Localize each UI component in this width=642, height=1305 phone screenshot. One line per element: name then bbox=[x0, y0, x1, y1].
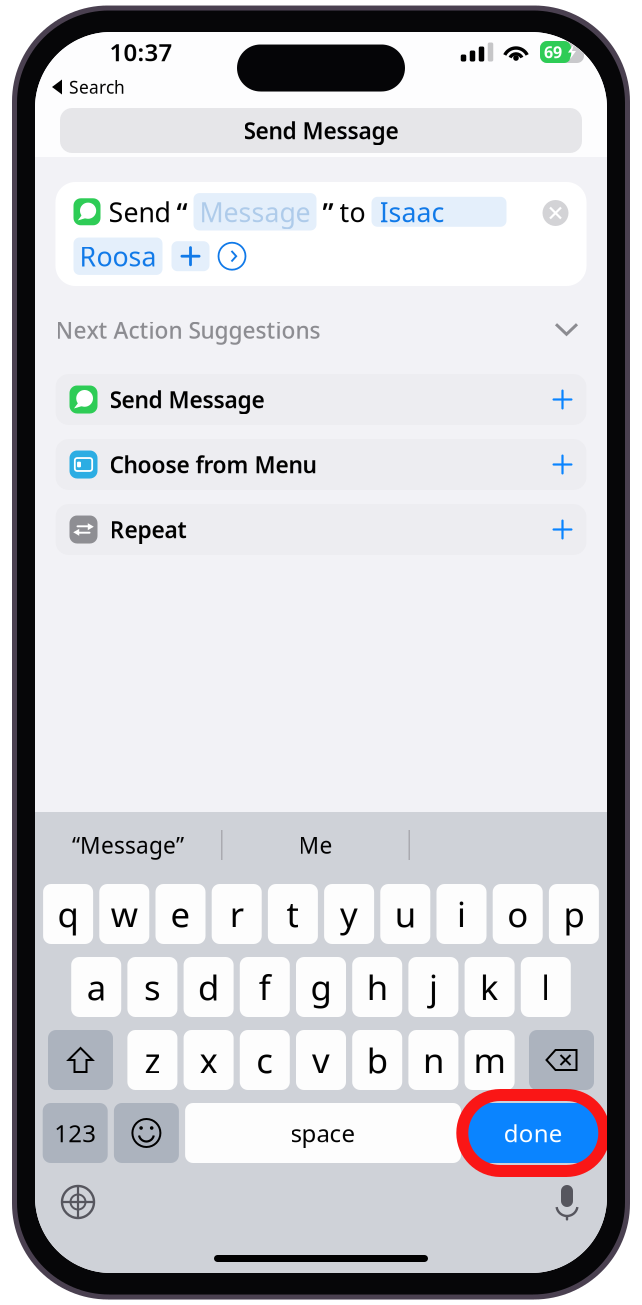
staticText: v bbox=[312, 1037, 330, 1083]
staticText: a bbox=[87, 964, 106, 1010]
staticText: f bbox=[259, 964, 271, 1010]
button[interactable]: j bbox=[408, 957, 458, 1017]
staticText: “Message” bbox=[72, 830, 184, 860]
button[interactable]: m bbox=[465, 1030, 515, 1090]
staticText: s bbox=[144, 964, 161, 1010]
button[interactable]: space bbox=[185, 1103, 461, 1163]
staticText: Repeat bbox=[109, 514, 186, 544]
staticText: z bbox=[144, 1037, 160, 1083]
staticText: y bbox=[340, 891, 358, 937]
staticText: Send Message bbox=[243, 115, 398, 145]
button[interactable]: y bbox=[324, 884, 374, 944]
staticText: d bbox=[198, 964, 219, 1010]
staticText: u bbox=[395, 891, 416, 937]
staticText: Me bbox=[298, 830, 332, 860]
staticText: c bbox=[256, 1037, 273, 1083]
staticText: Roosa bbox=[79, 238, 156, 274]
staticText: w bbox=[111, 891, 138, 937]
staticText: done bbox=[504, 1117, 563, 1149]
staticText: n bbox=[423, 1037, 444, 1083]
button[interactable]: k bbox=[465, 957, 515, 1017]
button[interactable]: done bbox=[467, 1103, 599, 1163]
button[interactable]: o bbox=[493, 884, 543, 944]
button[interactable]: Delete bbox=[529, 1030, 594, 1090]
staticText: b bbox=[367, 1037, 388, 1083]
staticText: g bbox=[310, 964, 331, 1010]
button[interactable]: i bbox=[436, 884, 486, 944]
button[interactable]: “Message” bbox=[35, 820, 221, 870]
staticText: t bbox=[286, 891, 299, 937]
button[interactable]: Send Message bbox=[55, 374, 586, 425]
button[interactable]: d bbox=[184, 957, 234, 1017]
staticText: 123 bbox=[54, 1117, 96, 1149]
button[interactable]: n bbox=[408, 1030, 458, 1090]
button[interactable]: v bbox=[296, 1030, 346, 1090]
button[interactable]: x bbox=[184, 1030, 234, 1090]
staticText: x bbox=[200, 1037, 218, 1083]
staticText: Next Action Suggestions bbox=[55, 315, 320, 345]
staticText: m bbox=[474, 1037, 506, 1083]
button[interactable]: a bbox=[71, 957, 121, 1017]
button[interactable]: Choose from Menu bbox=[55, 439, 586, 490]
staticText: k bbox=[480, 964, 499, 1010]
button[interactable]: b bbox=[352, 1030, 402, 1090]
button[interactable]: g bbox=[296, 957, 346, 1017]
button[interactable]: l bbox=[521, 957, 571, 1017]
button[interactable]: q bbox=[43, 884, 93, 944]
staticText: e bbox=[170, 891, 190, 937]
button[interactable]: c bbox=[240, 1030, 290, 1090]
button[interactable]: Search bbox=[35, 72, 125, 102]
staticText: Message bbox=[199, 194, 310, 229]
staticText: to bbox=[339, 194, 365, 229]
staticText: Isaac bbox=[379, 194, 444, 229]
staticText: l bbox=[541, 964, 550, 1010]
staticText: q bbox=[58, 891, 79, 937]
button[interactable]: Send Message bbox=[60, 108, 582, 153]
button[interactable]: Emoji bbox=[114, 1103, 179, 1163]
button[interactable]: r bbox=[212, 884, 262, 944]
button[interactable]: z bbox=[127, 1030, 177, 1090]
button[interactable]: p bbox=[549, 884, 599, 944]
button[interactable]: s bbox=[127, 957, 177, 1017]
staticText: 69 bbox=[544, 41, 562, 63]
staticText: Search bbox=[69, 75, 125, 98]
staticText: Send Message bbox=[109, 384, 264, 414]
button[interactable]: Collapse suggestions bbox=[546, 310, 586, 350]
staticText: Choose from Menu bbox=[109, 449, 316, 479]
staticText: ” bbox=[322, 194, 333, 229]
button[interactable]: h bbox=[352, 957, 402, 1017]
button[interactable]: Switch keyboard bbox=[59, 1183, 97, 1221]
button[interactable]: u bbox=[380, 884, 430, 944]
staticText: i bbox=[457, 891, 466, 937]
button[interactable]: Repeat bbox=[55, 504, 586, 555]
staticText: h bbox=[367, 964, 388, 1010]
staticText: j bbox=[429, 964, 438, 1010]
button[interactable]: e bbox=[155, 884, 205, 944]
staticText: space bbox=[291, 1117, 356, 1149]
staticText: o bbox=[507, 891, 528, 937]
button[interactable]: Me bbox=[222, 820, 408, 870]
staticText: p bbox=[563, 891, 584, 937]
button[interactable]: Remove action bbox=[538, 196, 572, 230]
button[interactable]: t bbox=[268, 884, 318, 944]
button[interactable]: 123 bbox=[43, 1103, 108, 1163]
button[interactable]: f bbox=[240, 957, 290, 1017]
staticText: r bbox=[230, 891, 244, 937]
button[interactable]: Dictation bbox=[551, 1182, 583, 1222]
button[interactable]: Shift bbox=[48, 1030, 113, 1090]
staticText: “ bbox=[176, 194, 187, 229]
button[interactable]: w bbox=[99, 884, 149, 944]
staticText: Send bbox=[108, 194, 170, 229]
staticText: 10:37 bbox=[109, 36, 172, 68]
